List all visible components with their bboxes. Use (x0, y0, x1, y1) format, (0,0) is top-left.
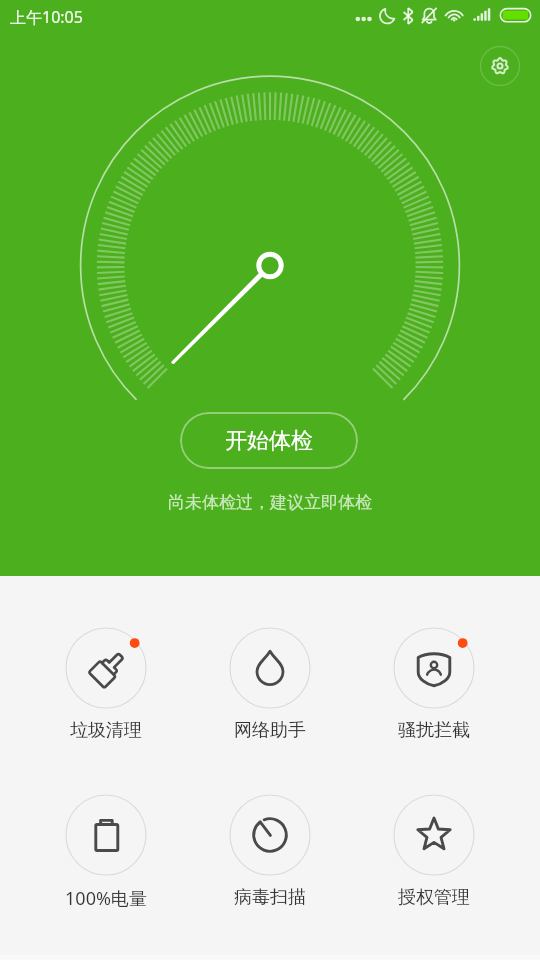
button[interactable]: 垃圾清理 (30, 616, 182, 742)
button[interactable]: 授权管理 (358, 783, 510, 909)
button[interactable]: 网络助手 (194, 616, 346, 742)
staticText: 骚扰拦截 (358, 719, 510, 742)
staticText: 尚未体检过，建议立即体检 (0, 492, 540, 513)
button[interactable]: 病毒扫描 (194, 783, 346, 909)
staticText: 网络助手 (194, 719, 346, 742)
staticText: 垃圾清理 (30, 719, 182, 742)
staticText: 开始体检 (225, 427, 313, 455)
staticText: 病毒扫描 (194, 886, 346, 909)
button[interactable]: 骚扰拦截 (358, 616, 510, 742)
staticText: 上午10:05 (10, 6, 83, 28)
staticText: 授权管理 (358, 886, 510, 909)
staticText: 100%电量 (30, 886, 182, 911)
button[interactable]: 开始体检 (180, 412, 358, 469)
button[interactable]: 100%电量 (30, 783, 182, 909)
button[interactable]: Settings (474, 40, 526, 92)
